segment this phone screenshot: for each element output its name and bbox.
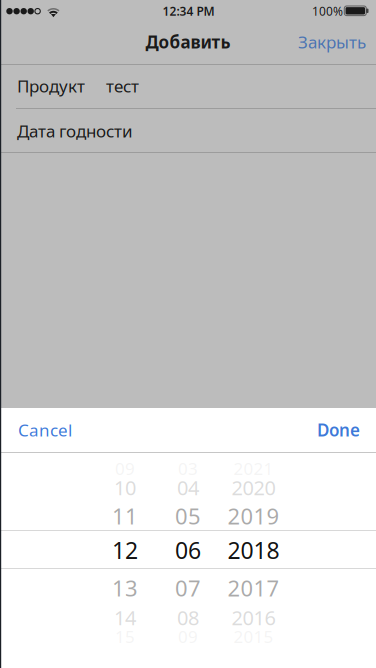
staticText: 2020 [231,474,275,501]
staticText: 12 [112,534,138,566]
staticText: Добавить [145,30,230,54]
staticText: Закрыть [298,30,366,54]
staticText: 06 [175,534,201,566]
staticText: 2018 [227,534,279,566]
button[interactable]: Закрыть [282,20,366,64]
staticText: 09 [178,625,198,648]
staticText: 04 [177,474,199,501]
staticText: 05 [175,501,201,531]
button[interactable]: Дата годности [0,109,376,153]
staticText: 13 [112,573,138,603]
staticText: 08 [177,604,199,631]
staticText: Done [317,418,360,442]
button[interactable]: Cancel [18,408,94,452]
button[interactable]: Done [284,408,360,452]
staticText: 2021 [233,457,273,480]
staticText: 2017 [227,573,279,603]
staticText: 11 [112,501,138,531]
staticText: 2019 [227,501,279,531]
staticText: 07 [175,573,201,603]
staticText: 2015 [233,625,273,648]
staticText: тест [106,74,139,98]
staticText: Продукт [17,74,85,98]
staticText: 14 [114,604,136,631]
staticText: 03 [178,457,198,480]
staticText: 12:34 PM [162,3,214,19]
button[interactable]: Продукт [0,64,376,108]
staticText: 10 [114,474,136,501]
staticText: Cancel [18,418,72,442]
staticText: 100% [312,3,343,19]
staticText: Дата годности [17,119,133,143]
staticText: 15 [115,625,135,648]
staticText: 09 [115,457,135,480]
staticText: 2016 [231,604,275,631]
